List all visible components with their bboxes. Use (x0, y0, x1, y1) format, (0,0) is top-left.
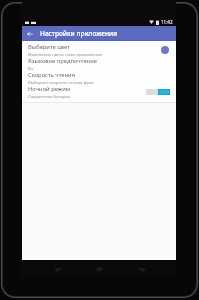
button[interactable]: Back (49, 261, 65, 277)
staticText: Скорость чтения (28, 71, 76, 79)
staticText: Языковое предпочтение (28, 57, 97, 65)
staticText: Выберите скорость чтения фраз (28, 80, 94, 85)
staticText: Настройки приложения (40, 29, 117, 38)
button[interactable]: Back (22, 26, 37, 41)
button[interactable]: Night mode toggle (145, 87, 171, 97)
button[interactable]: Ночной режим (22, 85, 176, 99)
button[interactable]: Выберите цвет (22, 43, 176, 57)
button[interactable]: Recent apps (134, 261, 150, 277)
staticText: Ru (28, 66, 34, 71)
staticText: Выберите цвет (28, 43, 70, 51)
button[interactable]: Home (91, 261, 107, 277)
button[interactable]: Языковое предпочтение (22, 57, 176, 71)
staticText: Ночной режим (28, 85, 71, 93)
staticText: Изменение цвета темы приложения (28, 52, 102, 57)
button[interactable]: Скорость чтения (22, 71, 176, 85)
staticText: 11:42 (161, 19, 173, 25)
staticText: Сохранение батареи (28, 94, 71, 99)
button[interactable]: Choose colour (159, 44, 171, 56)
